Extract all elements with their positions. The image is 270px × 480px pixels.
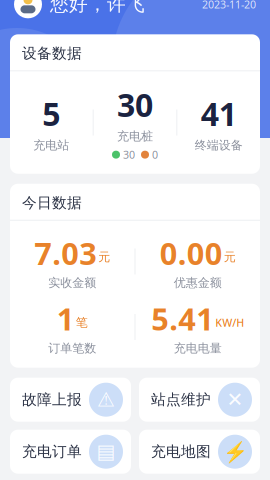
staticText: 您好，许飞	[50, 0, 145, 16]
staticText: 30	[117, 83, 153, 126]
button[interactable]: ⚠	[10, 378, 131, 422]
button[interactable]: ✕	[139, 378, 260, 422]
staticText: ⚡	[222, 440, 247, 463]
staticText: 笔	[76, 315, 88, 330]
staticText: 充电桩	[117, 129, 153, 143]
staticText: 0.00	[160, 233, 223, 273]
staticText: 41	[201, 92, 237, 135]
staticText: 设备数据	[22, 44, 82, 62]
staticText: 站点维护	[151, 391, 211, 409]
staticText: ⚠	[97, 388, 115, 411]
staticText: KW/H	[215, 315, 244, 330]
staticText: 故障上报	[22, 391, 82, 409]
staticText: 充电地图	[151, 443, 211, 461]
staticText: 充电站	[33, 138, 69, 153]
staticText: 今日数据	[22, 194, 82, 212]
staticText: 7.03	[34, 233, 97, 273]
staticText: 2023-11-20	[202, 0, 256, 11]
staticText: 5	[42, 92, 60, 135]
staticText: ▤	[96, 440, 115, 463]
button[interactable]: ▤	[10, 430, 131, 474]
staticText: 优惠金额	[174, 275, 222, 290]
staticText: 1	[57, 298, 75, 339]
staticText: 订单笔数	[48, 341, 96, 356]
staticText: 0	[152, 148, 158, 162]
staticText: 5.41	[151, 298, 214, 339]
button[interactable]: ⚡	[139, 430, 260, 474]
staticText: 终端设备	[195, 138, 243, 153]
staticText: 充电订单	[22, 443, 82, 461]
staticText: 充电电量	[174, 341, 222, 356]
staticText: 元	[98, 250, 110, 264]
staticText: 元	[224, 250, 236, 264]
staticText: ✕	[226, 388, 243, 411]
staticText: 30	[123, 148, 135, 162]
staticText: 实收金额	[48, 275, 96, 290]
